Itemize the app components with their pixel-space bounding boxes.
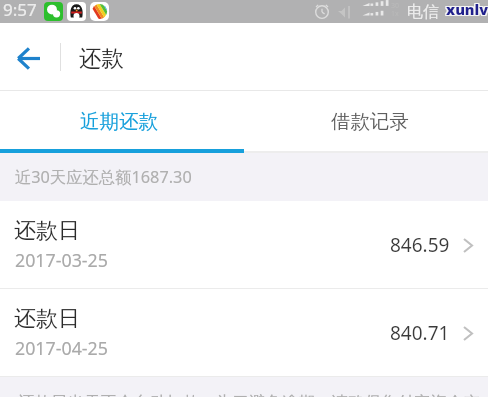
staticText: 840.71 — [390, 320, 450, 346]
staticText: 2017-04-25 — [15, 336, 108, 360]
staticText: xunlv — [445, 0, 488, 18]
staticText: 电信 — [407, 2, 439, 22]
staticText: xunlv — [447, 0, 488, 20]
staticText: 9:57 — [3, 0, 37, 21]
staticText: 846.59 — [390, 232, 450, 258]
staticText: 近期还款 — [80, 109, 158, 134]
staticText: xunlv — [447, 0, 488, 19]
staticText: xunlv — [446, 0, 488, 19]
staticText: 近30天应还总额1687.30 — [15, 166, 192, 188]
staticText: 借款记录 — [331, 109, 409, 134]
staticText: 还款日当天不会自动扣款，为了避免逾期，请确保您付完资金充 — [18, 392, 480, 397]
button[interactable]: 还款日 — [0, 289, 488, 377]
button[interactable]: Back — [0, 23, 56, 91]
staticText: xunlv — [445, 0, 488, 19]
staticText: 2017-03-25 — [15, 248, 108, 272]
button[interactable]: 还款日 — [0, 201, 488, 289]
staticText: xunlv — [446, 0, 488, 20]
button[interactable]: 借款记录 — [244, 91, 488, 153]
staticText: xunlv — [447, 0, 488, 18]
staticText: xunlv — [445, 0, 488, 20]
staticText: 还款 — [79, 44, 124, 72]
button[interactable]: 近期还款 — [0, 91, 244, 153]
staticText: 还款日 — [14, 305, 80, 333]
staticText: 还款日 — [14, 217, 80, 245]
staticText: xunlv — [446, 0, 488, 18]
